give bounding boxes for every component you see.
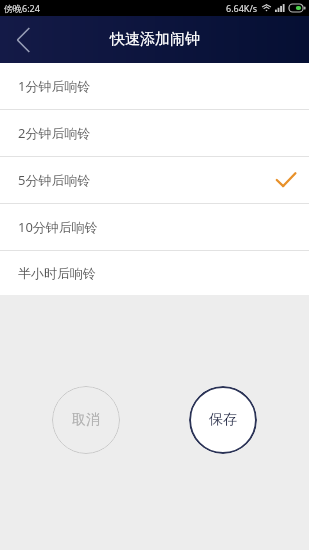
staticText: 10分钟后响铃 [18,218,98,236]
button[interactable]: Back [0,16,46,63]
staticText: 傍晚6:24 [4,2,40,14]
button[interactable]: 10分钟后响铃 [0,204,309,250]
staticText: 保存 [209,411,237,429]
button[interactable]: 2分钟后响铃 [0,110,309,156]
staticText: 1分钟后响铃 [18,77,91,95]
button[interactable]: 1分钟后响铃 [0,63,309,109]
staticText: 快速添加闹钟 [110,30,200,49]
button[interactable]: 5分钟后响铃 [0,157,309,203]
staticText: 2分钟后响铃 [18,124,91,142]
staticText: 5分钟后响铃 [18,171,91,189]
button[interactable]: 半小时后响铃 [0,251,309,295]
staticText: 6.64K/s [226,2,258,14]
button[interactable]: 取消 [52,386,120,454]
staticText: 半小时后响铃 [18,265,96,281]
staticText: 取消 [72,411,100,429]
button[interactable]: 保存 [189,386,257,454]
